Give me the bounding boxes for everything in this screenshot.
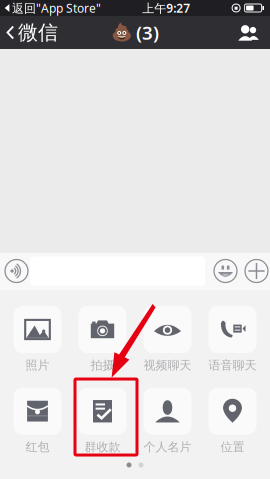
staticText: (3): [136, 20, 159, 45]
staticText: 返回"App Store": [12, 0, 101, 16]
button[interactable]: 群聊信息: [227, 16, 270, 49]
button[interactable]: 视频聊天: [135, 306, 200, 373]
button[interactable]: 个人名片: [135, 388, 200, 454]
staticText: 微信: [18, 20, 58, 45]
button[interactable]: 位置: [200, 388, 265, 454]
staticText: 💩: [111, 23, 133, 42]
button[interactable]: 拍摄: [70, 306, 135, 373]
staticText: 位置: [220, 440, 244, 454]
staticText: 上午9:27: [142, 0, 190, 16]
button[interactable]: 群收款: [70, 388, 135, 454]
button[interactable]: 微信: [0, 16, 66, 49]
staticText: 群收款: [84, 440, 120, 454]
button[interactable]: 红包: [5, 388, 70, 454]
button[interactable]: 照片: [5, 306, 70, 373]
button[interactable]: 语音聊天: [200, 306, 265, 373]
button[interactable]: 表情: [213, 258, 238, 283]
staticText: 红包: [25, 440, 49, 454]
button[interactable]: 语音输入: [4, 258, 29, 283]
button[interactable]: 更多功能: [244, 258, 269, 283]
staticText: 语音聊天: [208, 358, 256, 373]
staticText: 视频聊天: [143, 358, 191, 373]
staticText: 照片: [25, 358, 49, 373]
staticText: 个人名片: [143, 440, 191, 454]
staticText: 拍摄: [90, 358, 114, 373]
